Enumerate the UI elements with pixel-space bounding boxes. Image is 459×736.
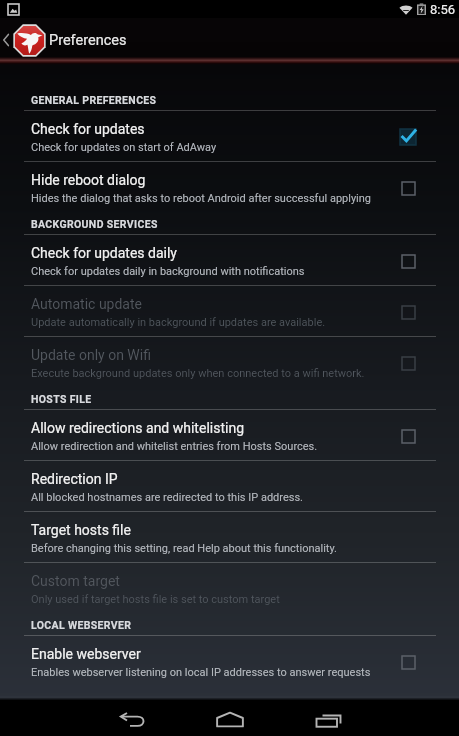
button[interactable]: Navigate up — [0, 18, 47, 62]
button[interactable]: Redirection IP — [0, 461, 459, 512]
staticText: Check for updates daily — [31, 245, 177, 261]
button[interactable]: Target hosts file — [0, 512, 459, 563]
staticText: Update automatically in background if up… — [31, 316, 326, 329]
staticText: Target hosts file — [31, 522, 131, 538]
button[interactable]: Custom target — [0, 563, 459, 614]
staticText: Enables webserver listening on local IP … — [31, 666, 371, 679]
staticText: Custom target — [31, 573, 120, 589]
button[interactable]: Enable webserver — [0, 636, 459, 687]
button[interactable]: Automatic update — [0, 286, 459, 337]
staticText: LOCAL WEBSERVER — [31, 619, 132, 631]
staticText: 8:56 — [430, 2, 456, 17]
staticText: Allow redirections and whitelisting — [31, 420, 244, 436]
button[interactable]: Recent apps — [279, 700, 377, 736]
staticText: GENERAL PREFERENCES — [31, 94, 157, 106]
staticText: BACKGROUND SERVICES — [31, 218, 158, 230]
staticText: Enable webserver — [31, 646, 141, 662]
staticText: Check for updates daily in background wi… — [31, 265, 305, 278]
staticText: Allow redirection and whitelist entries … — [31, 440, 318, 453]
staticText: Hides the dialog that asks to reboot And… — [31, 192, 372, 205]
staticText: Before changing this setting, read Help … — [31, 542, 337, 555]
staticText: Redirection IP — [31, 471, 118, 487]
staticText: Only used if target hosts file is set to… — [31, 593, 280, 606]
button[interactable]: Check for updates daily — [0, 235, 459, 286]
button[interactable]: Update only on Wifi — [0, 337, 459, 388]
staticText: All blocked hostnames are redirected to … — [31, 491, 304, 504]
button[interactable]: Home — [181, 700, 279, 736]
button[interactable]: Hide reboot dialog — [0, 162, 459, 213]
staticText: Preferences — [49, 32, 127, 49]
staticText: Check for updates on start of AdAway — [31, 141, 217, 154]
button[interactable]: Back — [83, 700, 181, 736]
staticText: Execute background updates only when con… — [31, 367, 365, 380]
staticText: Hide reboot dialog — [31, 172, 146, 188]
button[interactable]: Allow redirections and whitelisting — [0, 410, 459, 461]
staticText: Update only on Wifi — [31, 347, 151, 363]
staticText: HOSTS FILE — [31, 393, 92, 405]
staticText: Automatic update — [31, 296, 142, 312]
button[interactable]: Check for updates — [0, 111, 459, 162]
staticText: Check for updates — [31, 121, 145, 137]
